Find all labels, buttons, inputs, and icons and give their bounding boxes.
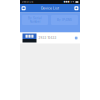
staticText: ●●● [63,1,69,3]
staticText: Number [29,20,40,23]
staticText: Device List [22,1,34,3]
staticText: 2933 10433 [38,36,56,40]
button[interactable]: 2933 10433 [20,32,80,43]
button[interactable]: By Serial [22,15,48,25]
button[interactable]: Menu [22,6,26,10]
staticText: By IP/DNS [57,18,72,22]
staticText: 9:41 [69,1,75,3]
button[interactable]: By IP/DNS [51,15,78,25]
staticText: Device List [41,6,59,10]
button[interactable]: Add device [74,6,78,10]
staticText: By Serial [28,17,42,20]
